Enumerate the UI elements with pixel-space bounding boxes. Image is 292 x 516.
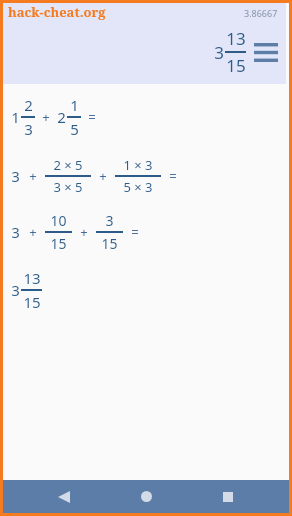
staticText: 5 × 3 [123,178,153,196]
staticText: 15 [226,54,246,77]
button[interactable]: Menu [253,39,279,65]
staticText: + [99,167,107,185]
staticText: = [88,108,96,126]
staticText: 3 [11,280,20,300]
staticText: 10 [50,211,67,230]
staticText: 13 [226,27,246,50]
button[interactable]: Back [43,480,85,513]
staticText: + [29,223,37,241]
staticText: 3 [214,41,224,64]
staticText: 3 [105,211,114,230]
staticText: 5 [70,119,79,139]
staticText: 13 [23,268,41,288]
staticText: 15 [50,234,67,253]
staticText: 3 [24,119,33,139]
button[interactable]: Home [125,480,167,513]
staticText: 3.86667 [244,7,278,19]
staticText: 15 [23,292,41,312]
staticText: 2 × 5 [53,156,83,174]
staticText: + [29,167,37,185]
staticText: + [80,223,88,241]
staticText: 2 [24,95,33,115]
staticText: 3 [11,222,20,242]
staticText: 1 × 3 [123,156,153,174]
staticText: hack-cheat.org [8,3,106,21]
staticText: = [131,223,139,241]
button[interactable]: Recents [207,480,249,513]
staticText: 2 [57,107,66,127]
staticText: 1 [70,95,79,115]
staticText: = [169,167,177,185]
staticText: 3 × 5 [53,178,83,196]
staticText: 15 [101,234,118,253]
staticText: 1 [11,107,20,127]
staticText: + [42,108,50,126]
staticText: 3 [11,166,20,186]
